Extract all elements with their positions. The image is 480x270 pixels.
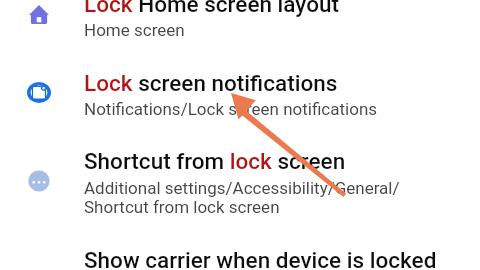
button[interactable]: Notifications — [27, 82, 51, 103]
button[interactable]: Lock screen notifications — [84, 70, 338, 96]
button[interactable]: Show carrier when device is locked — [84, 247, 437, 270]
button[interactable]: More settings — [28, 170, 50, 192]
button[interactable]: Home screen — [29, 5, 49, 24]
staticText: Additional settings/Accessibility/Genera… — [84, 178, 400, 217]
button[interactable]: Shortcut from lock screen — [84, 148, 346, 174]
button[interactable]: Lock Home screen layout — [84, 0, 339, 17]
staticText: Home screen — [84, 20, 185, 40]
staticText: Notifications/Lock screen notifications — [84, 99, 378, 119]
